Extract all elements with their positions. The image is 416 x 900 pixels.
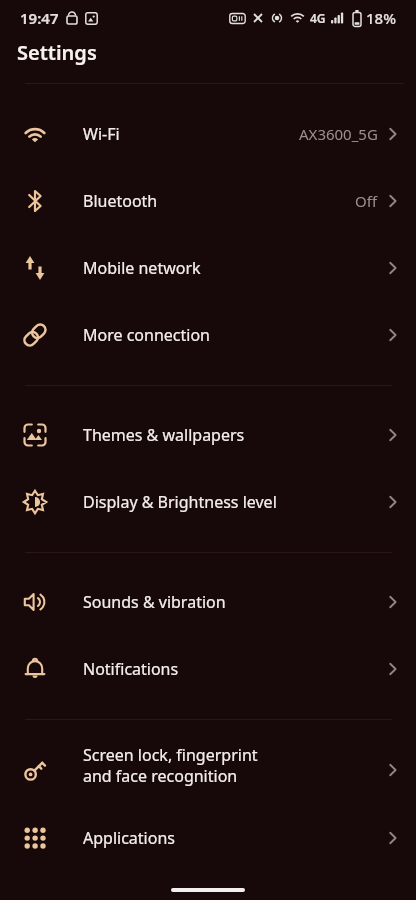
staticText: 4G (310, 10, 326, 26)
staticText: Mobile network (83, 257, 201, 279)
staticText: Screen lock, fingerprint and face recogn… (83, 744, 258, 787)
staticText: 18% (366, 8, 396, 28)
staticText: Settings (17, 39, 97, 66)
staticText: Themes & wallpapers (83, 424, 245, 446)
button[interactable]: More connection (0, 301, 416, 368)
button[interactable]: Screen lock, fingerprint and face recogn… (0, 735, 416, 804)
staticText: Applications (83, 827, 175, 849)
button[interactable]: Mobile network (0, 234, 416, 301)
staticText: More connection (83, 324, 210, 346)
button[interactable]: Notifications (0, 635, 416, 702)
staticText: 19:47 (20, 8, 59, 28)
button[interactable]: Wi-Fi (0, 100, 416, 167)
button[interactable]: Bluetooth (0, 167, 416, 234)
button[interactable]: Sounds & vibration (0, 568, 416, 635)
staticText: Wi-Fi (83, 123, 120, 145)
staticText: Display & Brightness level (83, 491, 277, 513)
staticText: Off (355, 191, 378, 211)
staticText: Notifications (83, 658, 179, 680)
staticText: Sounds & vibration (83, 591, 226, 613)
staticText: Bluetooth (83, 190, 158, 212)
button[interactable]: Themes & wallpapers (0, 401, 416, 468)
button[interactable]: Display & Brightness level (0, 468, 416, 535)
button[interactable]: Applications (0, 804, 416, 871)
staticText: AX3600_5G (299, 124, 378, 144)
